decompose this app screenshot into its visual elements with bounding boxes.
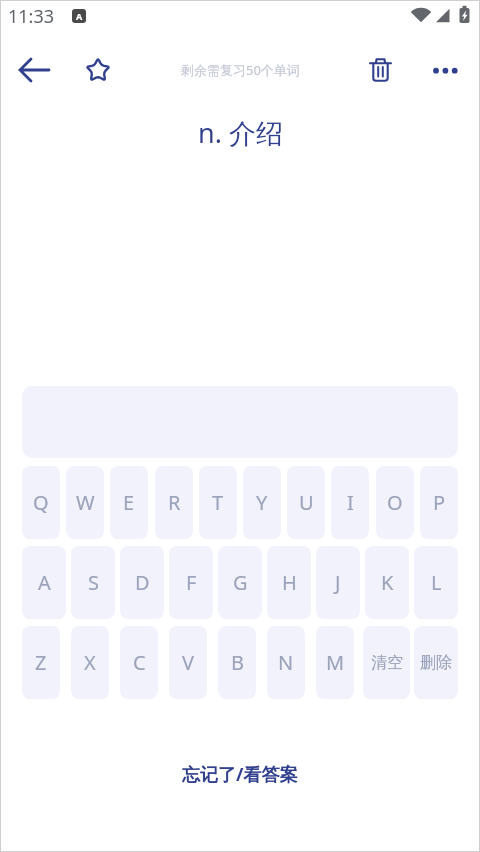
staticText: Z	[35, 649, 47, 676]
button[interactable]: N	[267, 626, 305, 699]
button[interactable]: E	[110, 466, 148, 539]
staticText: D	[135, 569, 150, 596]
button[interactable]: A	[22, 546, 66, 619]
button[interactable]: Z	[22, 626, 60, 699]
staticText: I	[347, 489, 354, 516]
button[interactable]: 删除	[414, 626, 458, 699]
button[interactable]: G	[218, 546, 262, 619]
staticText: A	[76, 10, 83, 22]
button[interactable]: T	[199, 466, 237, 539]
button[interactable]: P	[420, 466, 458, 539]
staticText: Y	[256, 489, 268, 516]
staticText: E	[123, 489, 135, 516]
button[interactable]: 忘记了/看答案	[140, 750, 340, 798]
staticText: F	[186, 569, 197, 596]
staticText: 忘记了/看答案	[182, 762, 298, 787]
staticText: L	[431, 569, 442, 596]
staticText: G	[233, 569, 248, 596]
staticText: n. 介绍	[198, 114, 283, 151]
staticText: A	[38, 569, 51, 596]
staticText: 删除	[420, 653, 452, 673]
staticText: M	[326, 649, 345, 676]
button[interactable]: K	[365, 546, 409, 619]
button[interactable]: U	[287, 466, 325, 539]
button[interactable]: B	[218, 626, 256, 699]
staticText: R	[168, 489, 181, 516]
button[interactable]: Y	[243, 466, 281, 539]
staticText: Q	[33, 489, 49, 516]
button[interactable]: F	[169, 546, 213, 619]
staticText: J	[335, 569, 341, 596]
button[interactable]: C	[120, 626, 158, 699]
staticText: B	[231, 649, 244, 676]
button[interactable]: M	[316, 626, 354, 699]
staticText: N	[278, 649, 294, 676]
staticText: U	[299, 489, 314, 516]
staticText: O	[387, 489, 403, 516]
staticText: W	[76, 489, 95, 516]
button[interactable]	[74, 46, 122, 94]
button[interactable]: X	[71, 626, 109, 699]
button[interactable]: S	[71, 546, 115, 619]
button[interactable]: Q	[22, 466, 60, 539]
staticText: 剩余需复习50个单词	[181, 61, 300, 79]
staticText: K	[381, 569, 394, 596]
button[interactable]: H	[267, 546, 311, 619]
button[interactable]: J	[316, 546, 360, 619]
button[interactable]: R	[155, 466, 193, 539]
staticText: P	[433, 489, 446, 516]
button[interactable]: V	[169, 626, 207, 699]
button[interactable]: W	[66, 466, 104, 539]
staticText: 清空	[371, 653, 403, 673]
staticText: C	[133, 649, 146, 676]
staticText: S	[88, 569, 99, 596]
staticText: T	[212, 489, 224, 516]
staticText: H	[282, 569, 297, 596]
button[interactable]: I	[331, 466, 369, 539]
button[interactable]: L	[414, 546, 458, 619]
button[interactable]	[419, 46, 467, 94]
staticText: X	[84, 649, 96, 676]
button[interactable]	[10, 46, 58, 94]
staticText: 11:33	[8, 4, 55, 28]
staticText: V	[182, 649, 194, 676]
button[interactable]: 清空	[363, 626, 410, 699]
button[interactable]: D	[120, 546, 164, 619]
button[interactable]: O	[376, 466, 414, 539]
button[interactable]	[356, 46, 404, 94]
